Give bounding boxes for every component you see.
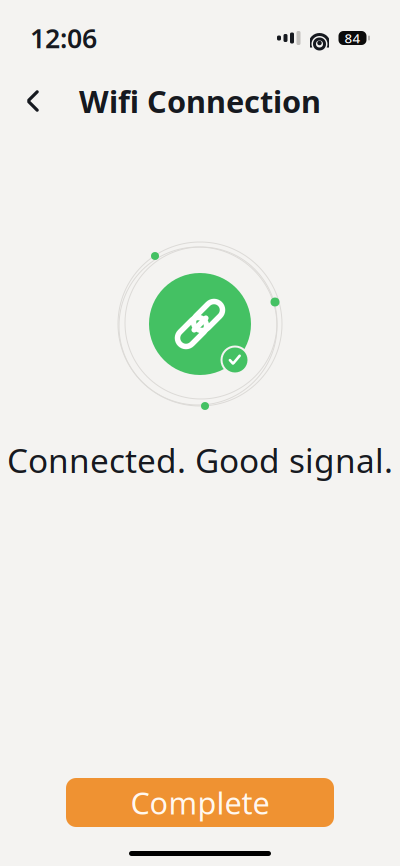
button[interactable]: Complete: [66, 778, 334, 827]
staticText: Complete: [130, 782, 269, 823]
button[interactable]: Back: [10, 78, 56, 124]
staticText: Wifi Connection: [79, 81, 321, 121]
staticText: Connected. Good signal.: [7, 438, 393, 482]
staticText: 12:06: [30, 20, 97, 56]
staticText: 84: [344, 29, 360, 47]
